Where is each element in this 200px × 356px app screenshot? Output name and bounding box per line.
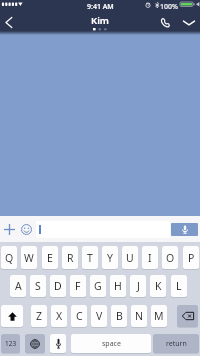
button[interactable]: Emoji	[18, 218, 34, 240]
staticText: K	[155, 279, 162, 293]
staticText: V	[96, 309, 103, 323]
staticText: M	[154, 309, 164, 323]
button[interactable]: Shift	[1, 305, 23, 327]
staticText: S	[35, 279, 41, 293]
button[interactable]: More options	[179, 13, 198, 32]
button[interactable]: D	[50, 275, 66, 297]
button[interactable]: Z	[31, 305, 47, 327]
staticText: E	[47, 251, 53, 265]
staticText: T	[87, 251, 93, 265]
button[interactable]: I	[142, 246, 158, 269]
button[interactable]: G	[90, 275, 106, 297]
button[interactable]: H	[110, 275, 126, 297]
button[interactable]: O	[162, 246, 178, 269]
button[interactable]: T	[82, 246, 98, 269]
button[interactable]: M	[151, 305, 167, 327]
staticText: return	[166, 339, 187, 349]
staticText: 9:41 AM	[87, 2, 114, 12]
button[interactable]: Dictate	[50, 334, 66, 353]
staticText: X	[56, 309, 63, 323]
button[interactable]	[36, 221, 170, 238]
button[interactable]: B	[111, 305, 127, 327]
staticText: space	[102, 339, 121, 349]
staticText: D	[54, 279, 62, 293]
staticText: Q	[5, 251, 14, 265]
staticText: Y	[107, 251, 113, 265]
staticText: Kim	[91, 14, 109, 27]
staticText: H	[114, 279, 122, 293]
button[interactable]: A	[10, 275, 26, 297]
button[interactable]: J	[130, 275, 146, 297]
staticText: 100%	[160, 2, 178, 12]
button[interactable]: F	[70, 275, 86, 297]
button[interactable]: V	[91, 305, 107, 327]
staticText: L	[176, 279, 182, 293]
staticText: U	[126, 251, 134, 265]
button[interactable]: Back	[0, 13, 18, 32]
staticText: F	[75, 279, 81, 293]
button[interactable]: E	[42, 246, 58, 269]
button[interactable]: S	[30, 275, 46, 297]
button[interactable]: 123	[1, 334, 20, 353]
button[interactable]: Backspace	[177, 305, 198, 327]
button[interactable]: Call	[157, 13, 174, 32]
staticText: I	[148, 251, 152, 265]
button[interactable]: U	[122, 246, 138, 269]
button[interactable]: Change keyboard	[25, 334, 45, 353]
staticText: G	[94, 279, 102, 293]
staticText: 123	[5, 339, 17, 348]
staticText: A	[15, 279, 22, 293]
staticText: J	[137, 279, 140, 293]
button[interactable]: P	[183, 246, 199, 269]
button[interactable]: space	[71, 334, 151, 353]
staticText: W	[24, 251, 34, 265]
button[interactable]: W	[21, 246, 37, 269]
button[interactable]: return	[153, 334, 199, 353]
staticText: P	[188, 251, 195, 265]
button[interactable]: C	[71, 305, 87, 327]
button[interactable]: Q	[1, 246, 17, 269]
staticText: R	[67, 251, 74, 265]
button[interactable]: N	[131, 305, 147, 327]
staticText: O	[166, 251, 175, 265]
button[interactable]: Add attachment	[1, 218, 17, 240]
button[interactable]: Y	[102, 246, 118, 269]
button[interactable]: K	[150, 275, 166, 297]
staticText: B	[116, 309, 123, 323]
button[interactable]: X	[51, 305, 67, 327]
button[interactable]: R	[62, 246, 78, 269]
staticText: N	[135, 309, 143, 323]
button[interactable]: L	[171, 275, 187, 297]
button[interactable]: Voice message	[171, 223, 198, 236]
staticText: Z	[36, 309, 43, 323]
staticText: C	[76, 309, 83, 323]
